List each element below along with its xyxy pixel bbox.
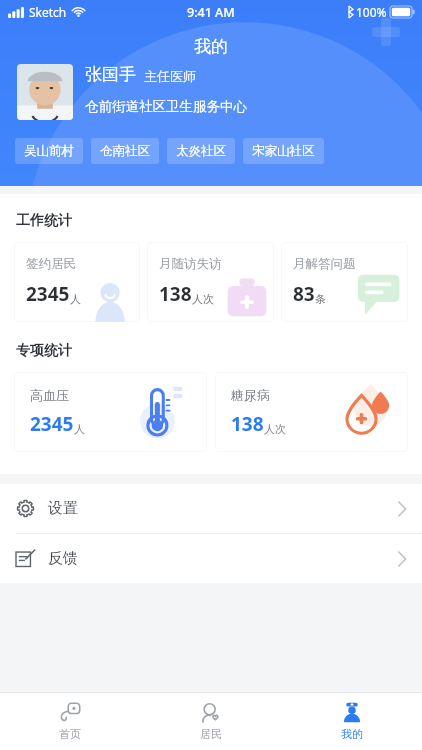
button[interactable]: 居民 <box>140 693 281 750</box>
staticText: 100% <box>356 4 387 20</box>
staticText: 太炎社区 <box>176 143 226 159</box>
staticText: 人次 <box>192 292 214 306</box>
staticText: 条 <box>315 292 326 306</box>
button[interactable]: 设置 <box>0 484 422 533</box>
button[interactable]: 高血压 <box>14 372 207 452</box>
staticText: 仓前街道社区卫生服务中心 <box>85 98 247 115</box>
staticText: 人 <box>70 292 81 306</box>
button[interactable]: 反馈 <box>0 534 422 583</box>
button[interactable]: 月解答问题 <box>281 242 408 322</box>
staticText: 工作统计 <box>16 212 72 230</box>
button[interactable]: 宋家山社区 <box>243 138 324 164</box>
button[interactable]: 太炎社区 <box>167 138 235 164</box>
staticText: 首页 <box>59 727 81 741</box>
staticText: 人 <box>74 422 85 436</box>
staticText: 月解答问题 <box>293 256 356 272</box>
staticText: 人次 <box>264 422 286 436</box>
button[interactable]: 吴山前村 <box>15 138 83 164</box>
staticText: 主任医师 <box>144 68 196 84</box>
button[interactable]: 我的 <box>281 693 422 750</box>
button[interactable]: 首页 <box>0 693 140 750</box>
staticText: 吴山前村 <box>24 143 74 159</box>
staticText: 反馈 <box>48 549 78 568</box>
staticText: 宋家山社区 <box>252 143 315 159</box>
staticText: 签约居民 <box>26 256 76 272</box>
staticText: 月随访失访 <box>159 256 222 272</box>
staticText: Sketch <box>29 4 67 20</box>
staticText: 仓南社区 <box>100 143 150 159</box>
staticText: 9:41 AM <box>187 4 235 21</box>
staticText: 138 <box>231 411 264 437</box>
staticText: 138 <box>159 281 192 307</box>
staticText: 张国手 <box>85 64 136 85</box>
staticText: 专项统计 <box>16 342 72 360</box>
staticText: 居民 <box>200 727 222 741</box>
button[interactable]: 月随访失访 <box>147 242 274 322</box>
button[interactable]: 仓南社区 <box>91 138 159 164</box>
staticText: 我的 <box>0 36 422 57</box>
button[interactable]: 签约居民 <box>14 242 140 322</box>
staticText: 83 <box>293 281 315 307</box>
staticText: 2345 <box>26 281 70 307</box>
staticText: 高血压 <box>30 387 69 403</box>
staticText: 设置 <box>48 499 78 518</box>
staticText: 我的 <box>341 727 363 741</box>
staticText: 糖尿病 <box>231 387 270 403</box>
staticText: 2345 <box>30 411 74 437</box>
button[interactable]: 糖尿病 <box>215 372 408 452</box>
